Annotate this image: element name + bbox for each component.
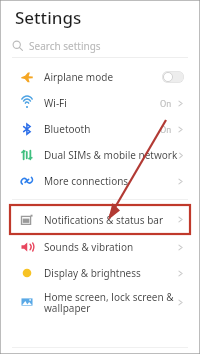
staticText: More connections [44,174,129,188]
staticText: Home screen, lock screen & wallpaper [44,290,174,315]
button[interactable]: Dual SIMs & mobile network [0,142,200,168]
button[interactable]: More connections [0,168,200,194]
staticText: Wi-Fi [44,96,67,110]
button[interactable]: Display & brightness [0,260,200,286]
staticText: Search settings [29,39,101,53]
staticText: Sounds & vibration [44,240,134,254]
button[interactable]: Wi-Fi [0,90,200,116]
button[interactable]: Airplane mode [0,64,200,90]
button[interactable]: Sounds & vibration [0,234,200,260]
staticText: On [160,98,172,109]
staticText: Settings [15,6,82,29]
staticText: Display & brightness [44,266,141,280]
staticText: Bluetooth [44,122,91,136]
staticText: Dual SIMs & mobile network [44,148,178,162]
button[interactable]: Search settings [12,34,188,57]
button[interactable]: Home screen, lock screen & wallpaper [0,286,200,318]
button[interactable]: Bluetooth [0,116,200,142]
button[interactable]: Airplane mode toggle [162,71,184,83]
staticText: Airplane mode [44,70,114,84]
staticText: On [160,124,172,135]
button[interactable]: Notifications & status bar [10,205,190,234]
staticText: Notifications & status bar [44,213,164,227]
